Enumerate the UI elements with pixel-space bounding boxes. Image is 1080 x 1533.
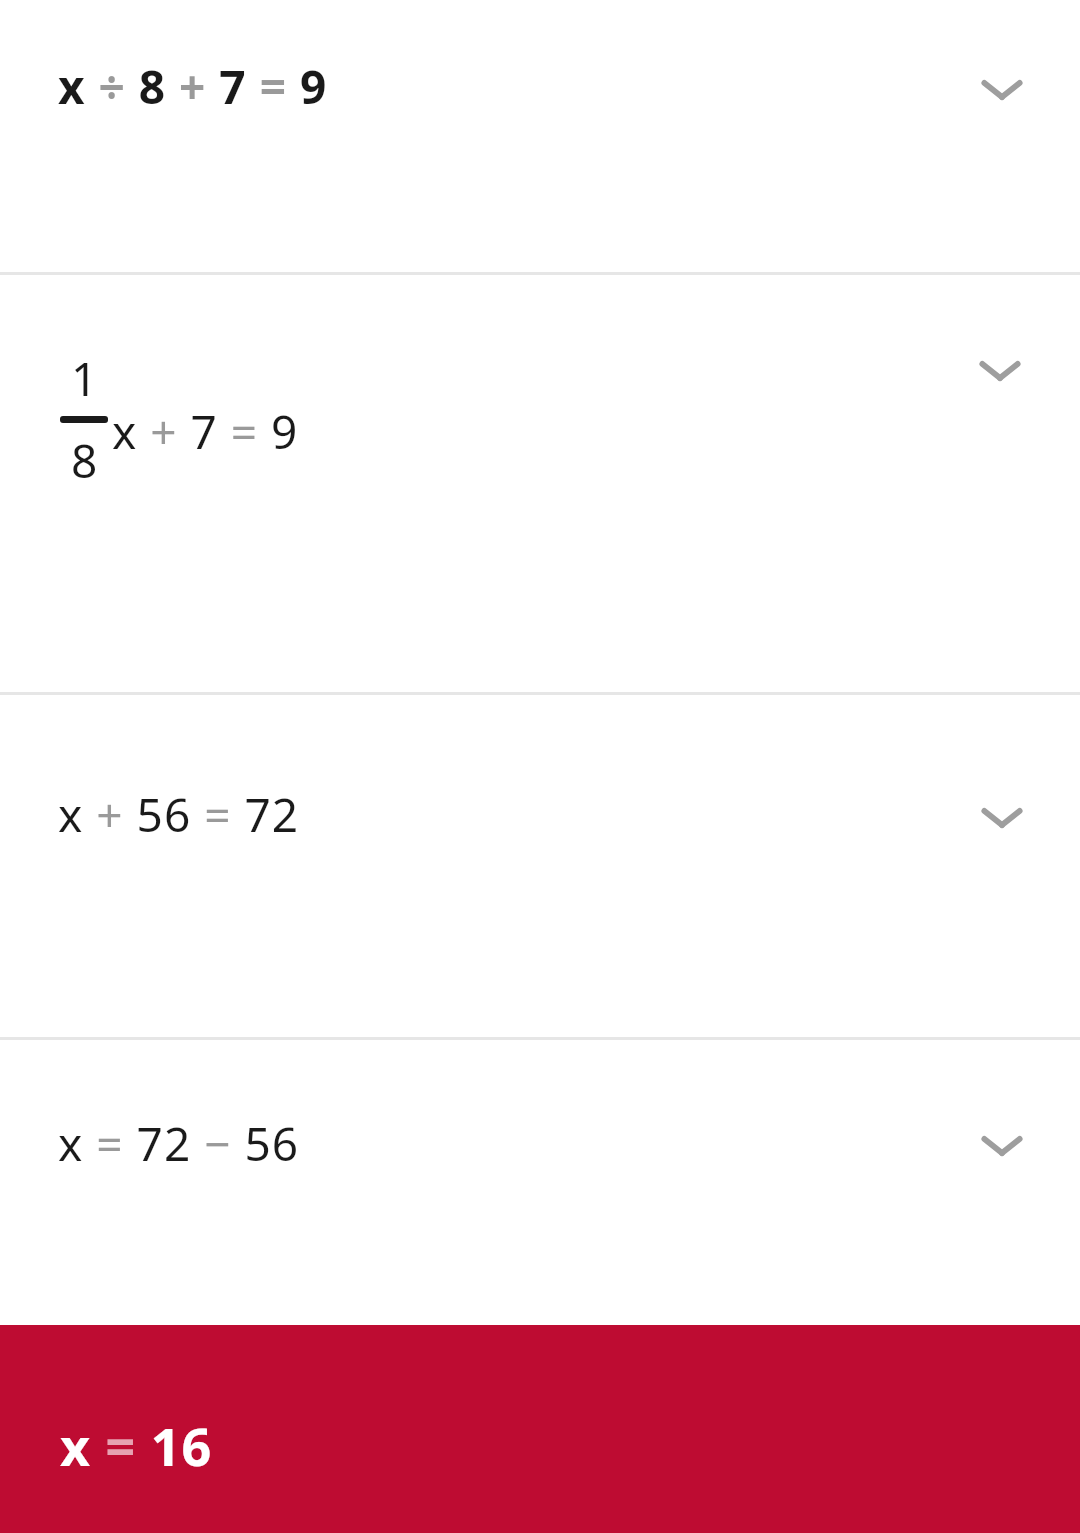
button[interactable]: 1	[0, 275, 1080, 692]
button[interactable]: x = 72 − 56	[0, 1040, 1080, 1325]
staticText: x ÷ 8 + 7 = 9	[58, 55, 328, 118]
button[interactable]: Expand step	[952, 323, 1048, 419]
button[interactable]: Expand step	[954, 1098, 1050, 1194]
button[interactable]: x ÷ 8 + 7 = 9	[0, 0, 1080, 272]
staticText: x + 7 = 9	[112, 400, 299, 463]
staticText: 1	[71, 347, 98, 410]
staticText: x + 56 = 72	[58, 783, 300, 846]
button[interactable]: Expand step	[954, 770, 1050, 866]
staticText: x = 16	[60, 1410, 213, 1481]
button[interactable]: Expand step	[954, 42, 1050, 138]
staticText: 8	[71, 429, 98, 492]
button[interactable]: x = 16	[0, 1325, 1080, 1533]
staticText: x = 72 − 56	[58, 1112, 300, 1175]
button[interactable]: x + 56 = 72	[0, 695, 1080, 1037]
